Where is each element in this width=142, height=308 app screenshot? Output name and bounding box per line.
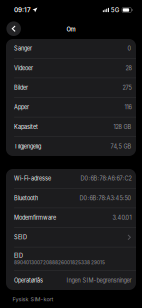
button[interactable]: Modemfirmware	[6, 208, 136, 227]
staticText: Videoer	[14, 65, 33, 71]
staticText: 5G	[111, 6, 120, 14]
staticText: Modemfirmware	[14, 214, 56, 221]
button[interactable]: Sanger	[6, 39, 136, 58]
staticText: 275	[122, 84, 131, 91]
staticText: 28	[125, 65, 131, 71]
button[interactable]: Videoer	[6, 59, 136, 78]
staticText: Ingen SIM-begrensninger	[66, 277, 131, 284]
staticText: Om	[66, 26, 75, 33]
button[interactable]: Tilgjengelig	[6, 137, 136, 156]
button[interactable]: Wi-Fi-adresse	[6, 169, 136, 188]
staticText: D0:6B:78:A3:45:50	[79, 195, 131, 201]
staticText: Kapasitet	[14, 123, 38, 130]
button[interactable]: SEID	[6, 228, 136, 247]
staticText: Wi-Fi-adresse	[14, 175, 51, 182]
staticText: 89040130072088826001825338 29015	[14, 260, 105, 265]
staticText: 09:17	[14, 6, 31, 14]
staticText: Bluetooth	[14, 195, 38, 201]
staticText: Fysisk SIM-kort	[12, 296, 53, 303]
button[interactable]: Bluetooth	[6, 189, 136, 208]
staticText: 128 GB	[113, 123, 131, 130]
button[interactable]: Apper	[6, 98, 136, 117]
button[interactable]: Bilder	[6, 78, 136, 97]
staticText: 0	[127, 45, 131, 52]
staticText: D0:6B:78:A6:67:C2	[80, 175, 131, 182]
button[interactable]: Back	[6, 21, 22, 38]
staticText: Operatørlås	[14, 277, 43, 284]
button[interactable]: Operatørlås	[6, 271, 136, 290]
staticText: Sanger	[14, 45, 32, 52]
staticText: 3.40.01	[112, 214, 131, 221]
staticText: SEID	[14, 234, 27, 241]
staticText: Bilder	[14, 84, 28, 91]
button[interactable]: EID	[6, 247, 136, 270]
staticText: Apper	[14, 104, 29, 111]
staticText: EID	[14, 252, 23, 259]
staticText: 74,5 GB	[110, 143, 131, 150]
staticText: 116	[124, 104, 131, 111]
button[interactable]: Kapasitet	[6, 117, 136, 136]
staticText: Tilgjengelig	[14, 143, 41, 150]
